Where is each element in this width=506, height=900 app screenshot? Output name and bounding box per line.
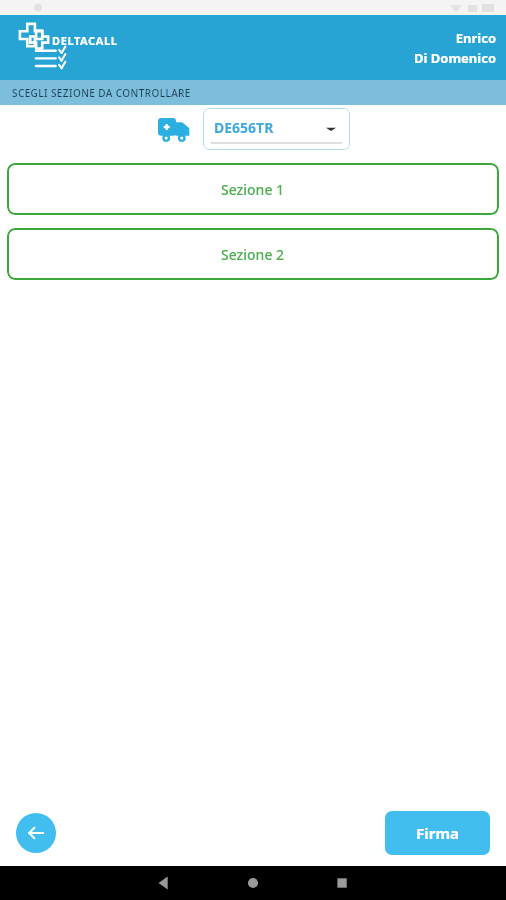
staticText: DELTACALL [52, 33, 118, 48]
staticText: DE656TR [214, 118, 274, 137]
staticText: Sezione 1 [221, 180, 285, 199]
staticText: Sezione 2 [221, 245, 285, 264]
button[interactable]: Sezione 2 [7, 228, 499, 280]
staticText: Di Domenico [413, 49, 496, 67]
button[interactable]: Sezione 1 [7, 163, 499, 215]
staticText: Enrico [455, 29, 496, 47]
button[interactable]: DE656TR [203, 108, 350, 150]
staticText: Firma [416, 823, 460, 843]
button[interactable]: Back [16, 813, 56, 853]
staticText: SCEGLI SEZIONE DA CONTROLLARE [12, 86, 191, 100]
button[interactable]: Firma [385, 811, 490, 855]
